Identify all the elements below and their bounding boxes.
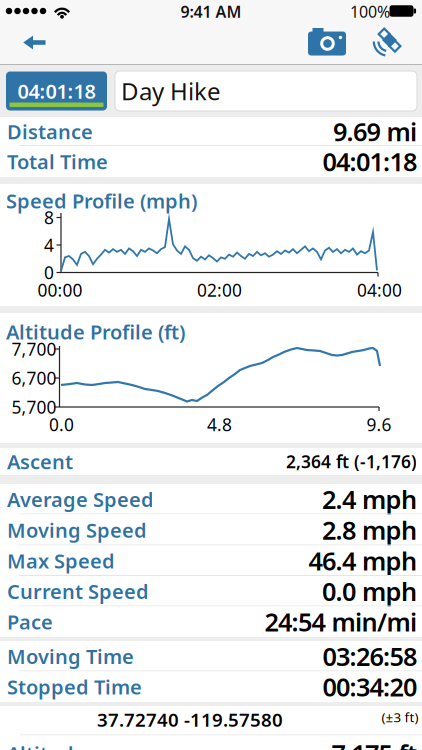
- staticText: 4.8: [207, 413, 232, 436]
- staticText: 9.69 mi: [333, 115, 417, 148]
- staticText: Current Speed: [7, 578, 149, 605]
- staticText: 04:01:18: [322, 145, 417, 178]
- staticText: 0: [44, 261, 54, 284]
- staticText: 2,364 ft (-1,176): [286, 450, 417, 473]
- staticText: 5,700: [11, 395, 56, 418]
- staticText: 00:34:20: [322, 670, 417, 703]
- staticText: Altitude Profile (ft): [6, 318, 185, 345]
- staticText: 7,175 ft: [331, 737, 417, 750]
- staticText: 7,700: [11, 337, 56, 360]
- staticText: 24:54 min/mi: [264, 605, 417, 638]
- staticText: Day Hike: [121, 75, 221, 107]
- button[interactable]: Back: [0, 22, 62, 64]
- staticText: 04:01:18: [17, 78, 95, 104]
- staticText: Pace: [7, 608, 53, 635]
- staticText: 02:00: [197, 278, 242, 301]
- staticText: Moving Time: [7, 643, 134, 670]
- button[interactable]: Recording timer: [6, 71, 107, 110]
- button[interactable]: Track name: [115, 71, 417, 111]
- staticText: Stopped Time: [7, 673, 142, 700]
- staticText: 0.0 mph: [322, 574, 417, 608]
- staticText: 46.4 mph: [308, 544, 417, 577]
- staticText: 00:00: [37, 278, 82, 301]
- staticText: 6,700: [11, 366, 56, 389]
- staticText: Max Speed: [7, 547, 115, 574]
- staticText: 100%: [350, 1, 390, 22]
- button[interactable]: GPS status: [364, 22, 414, 64]
- staticText: Ascent: [7, 448, 73, 475]
- staticText: 0.0: [49, 413, 74, 436]
- staticText: Total Time: [7, 148, 108, 175]
- staticText: 8: [44, 206, 54, 229]
- staticText: 2.8 mph: [322, 513, 417, 547]
- staticText: 04:00: [357, 278, 402, 301]
- staticText: Speed Profile (mph): [6, 187, 197, 214]
- staticText: (±3 ft): [381, 708, 418, 726]
- staticText: 4: [44, 233, 54, 256]
- staticText: 37.72740 -119.57580: [97, 707, 283, 732]
- staticText: 9.6: [366, 413, 391, 436]
- staticText: Moving Speed: [7, 517, 147, 543]
- staticText: Distance: [7, 118, 93, 145]
- staticText: Average Speed: [7, 486, 154, 513]
- button[interactable]: Camera: [299, 22, 355, 64]
- staticText: 03:26:58: [322, 639, 417, 673]
- staticText: Altitude: [7, 740, 86, 750]
- staticText: 2.4 mph: [322, 482, 417, 516]
- staticText: 9:41 AM: [180, 1, 241, 22]
